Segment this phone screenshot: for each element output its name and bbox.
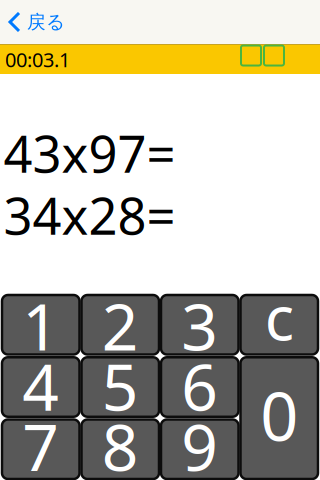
staticText: 0 — [260, 371, 298, 459]
staticText: 1 — [22, 283, 59, 368]
button[interactable]: 8 — [81, 419, 159, 479]
button[interactable]: 2 — [81, 295, 159, 354]
staticText: c — [265, 276, 294, 357]
staticText: 戻る — [27, 10, 65, 33]
staticText: 4 — [22, 343, 59, 428]
button[interactable]: 0 — [240, 357, 318, 479]
button[interactable]: 6 — [161, 357, 238, 417]
button[interactable]: 4 — [2, 357, 79, 417]
button[interactable]: 9 — [161, 419, 238, 479]
button[interactable]: c — [240, 295, 318, 354]
button[interactable]: 1 — [2, 295, 79, 354]
button[interactable]: 3 — [161, 295, 238, 354]
staticText: 5 — [102, 343, 139, 428]
button[interactable]: 戻る — [0, 0, 65, 44]
staticText: 6 — [181, 343, 218, 428]
staticText: 7 — [22, 404, 59, 480]
staticText: 3 — [181, 283, 218, 368]
staticText: 43x97= — [3, 119, 175, 187]
button[interactable]: 5 — [81, 357, 159, 417]
button[interactable]: 7 — [2, 419, 79, 479]
staticText: 9 — [181, 404, 218, 480]
staticText: 34x28= — [3, 181, 175, 249]
staticText: 00:03.1 — [5, 46, 70, 73]
staticText: 2 — [102, 283, 139, 368]
staticText: 8 — [102, 404, 139, 480]
